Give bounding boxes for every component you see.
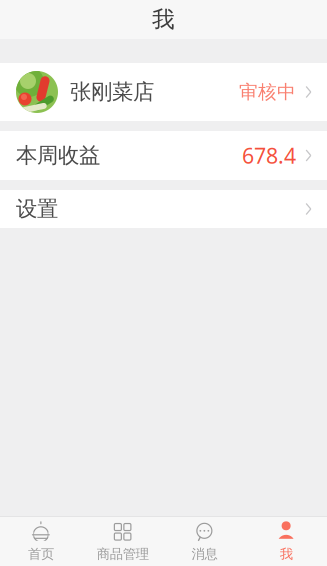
staticText: 消息 xyxy=(191,546,217,562)
button[interactable]: 设置 xyxy=(0,190,327,228)
staticText: 张刚菜店 xyxy=(70,79,154,105)
staticText: 678.4 xyxy=(242,141,296,170)
staticText: 商品管理 xyxy=(97,546,149,562)
staticText: 我 xyxy=(152,6,175,33)
staticText: 本周收益 xyxy=(16,142,100,169)
staticText: 我 xyxy=(280,546,293,562)
button[interactable]: 首页 xyxy=(0,517,82,566)
button[interactable]: 商品管理 xyxy=(82,517,164,566)
button[interactable]: 消息 xyxy=(163,517,245,566)
button[interactable]: 我 xyxy=(245,517,327,566)
button[interactable]: 张刚菜店 xyxy=(0,63,327,121)
staticText: 设置 xyxy=(16,196,58,222)
button[interactable]: 本周收益 xyxy=(0,131,327,180)
staticText: 首页 xyxy=(28,546,54,562)
staticText: 审核中 xyxy=(239,80,296,103)
